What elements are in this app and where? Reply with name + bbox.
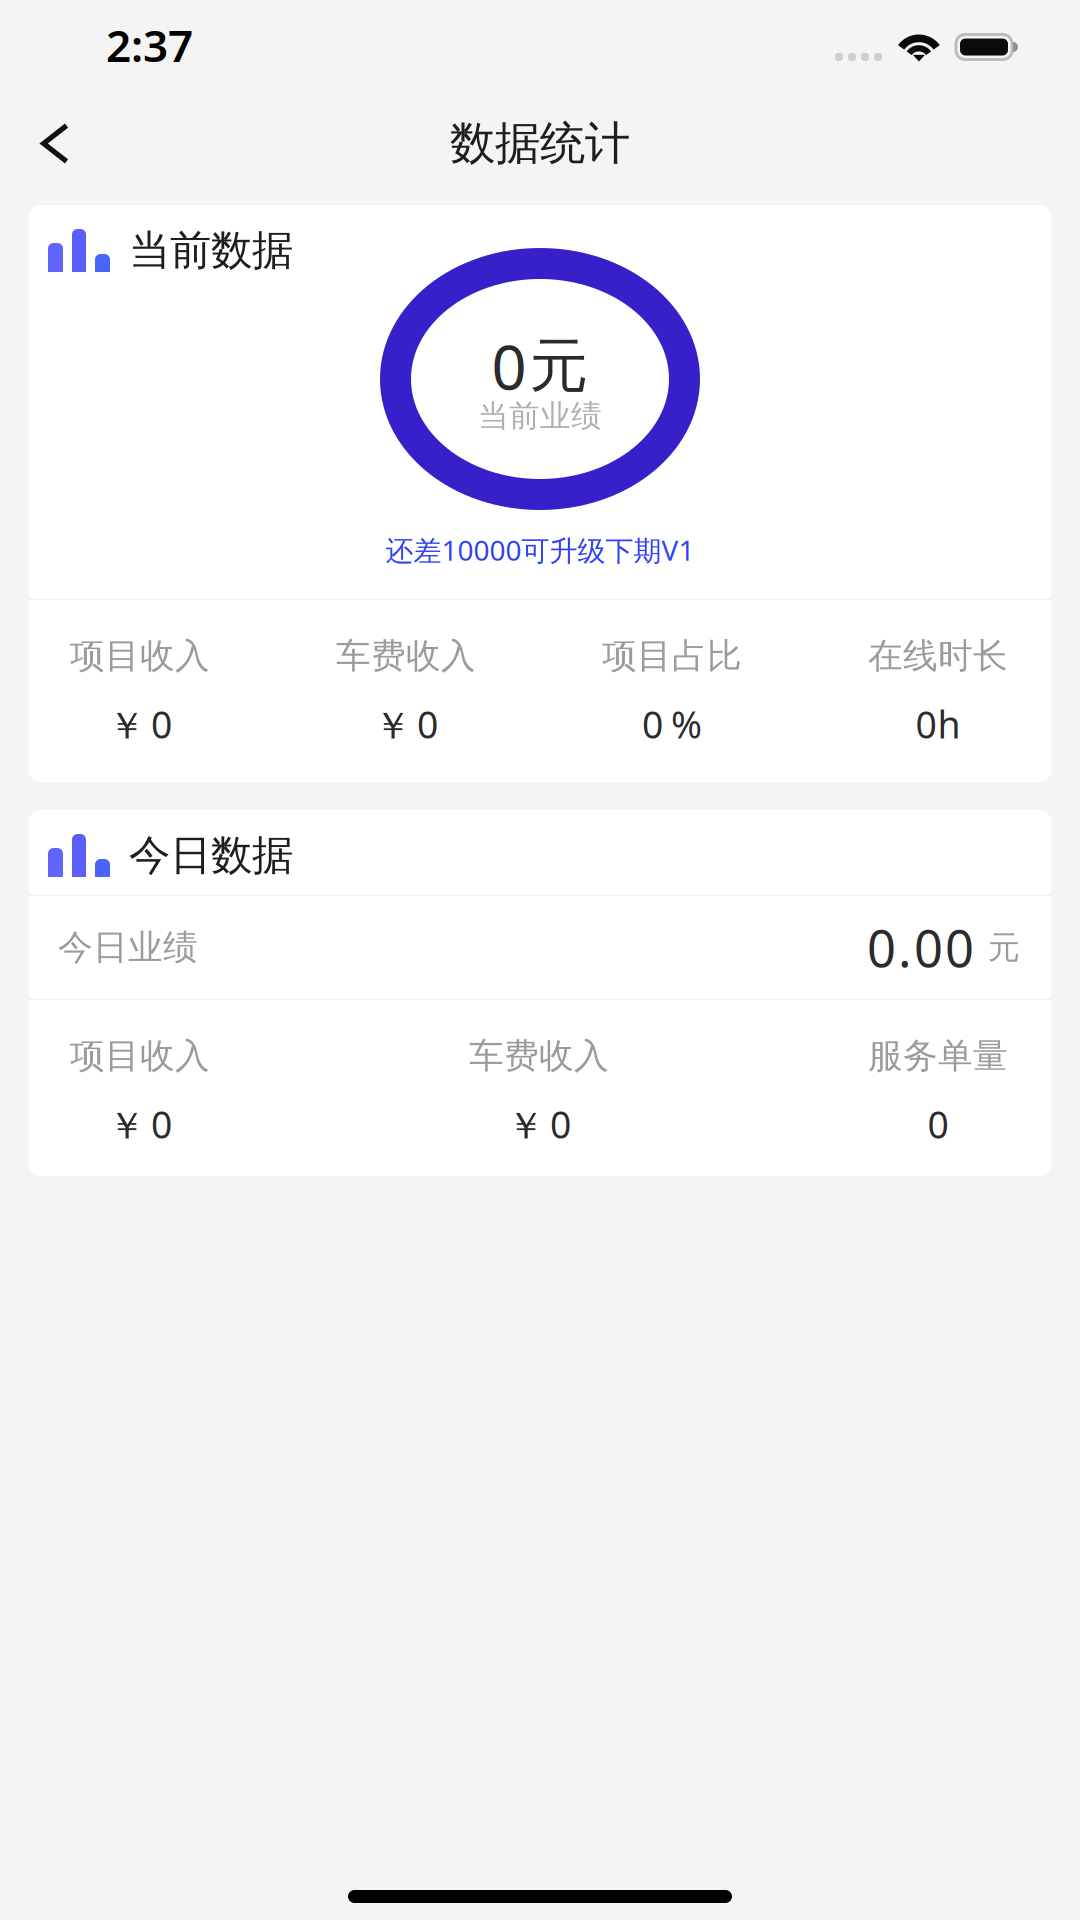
staticText: 0 [927,1099,948,1149]
staticText: 项目占比 [602,635,742,677]
staticText: 还差10000可升级下期V1 [385,531,694,569]
staticText: 在线时长 [868,635,1008,677]
button[interactable]: Back [18,108,92,178]
staticText: 0h [915,699,960,749]
staticText: 今日业绩 [58,926,198,969]
staticText: 0% [642,699,702,749]
staticText: 数据统计 [450,116,630,171]
staticText: 项目收入 [70,635,210,677]
staticText: 当前业绩 [478,397,602,435]
staticText: 车费收入 [336,635,476,677]
staticText: ￥0 [507,1099,571,1149]
staticText: 元 [988,928,1020,967]
staticText: ￥0 [108,699,172,749]
staticText: ￥0 [108,1099,172,1149]
staticText: ￥0 [374,699,438,749]
staticText: 2:37 [106,16,193,74]
staticText: 车费收入 [469,1035,609,1077]
staticText: 0 [491,325,526,407]
staticText: 今日数据 [129,830,293,881]
staticText: 当前数据 [129,225,293,276]
staticText: 项目收入 [70,1035,210,1077]
staticText: 服务单量 [868,1035,1008,1077]
staticText: 0.00 [867,914,974,981]
staticText: 元 [529,330,588,402]
